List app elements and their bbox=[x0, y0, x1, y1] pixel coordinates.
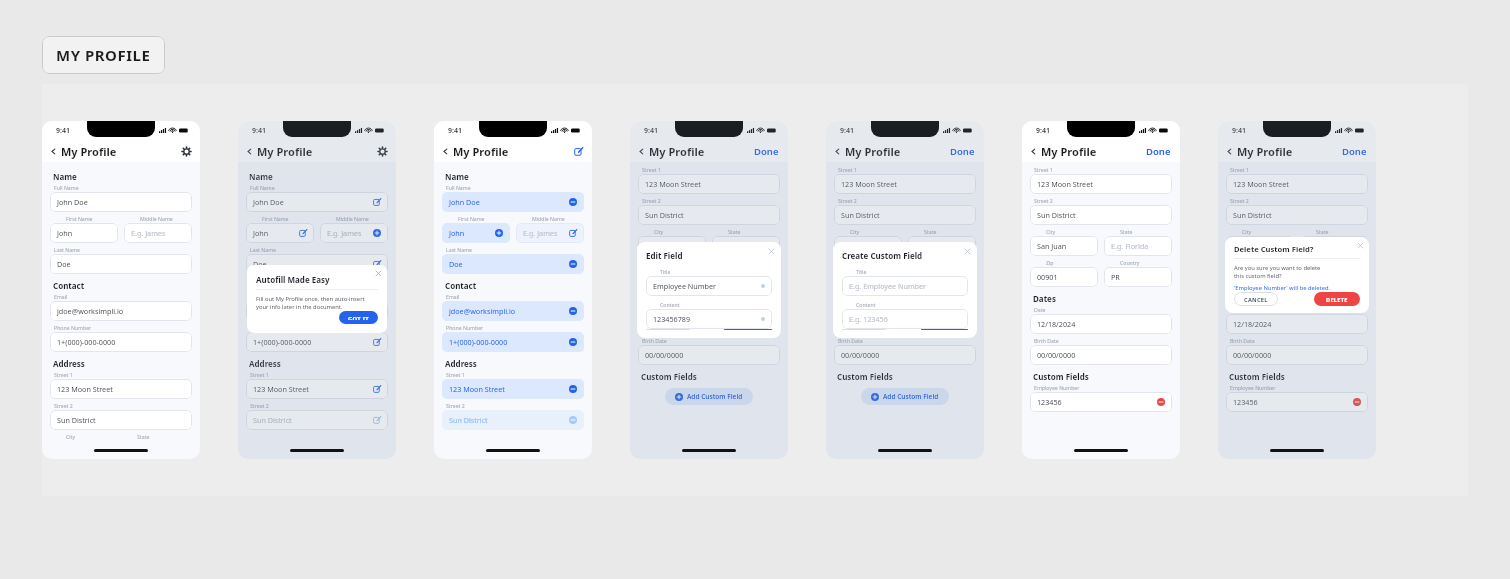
button[interactable]: Settings bbox=[378, 147, 387, 156]
button[interactable]: Settings bbox=[182, 147, 191, 156]
button[interactable]: John bbox=[50, 223, 118, 243]
button[interactable]: John Doe bbox=[442, 192, 584, 212]
button[interactable]: E.g. James bbox=[320, 223, 388, 243]
button[interactable]: Back bbox=[1226, 144, 1293, 159]
button[interactable]: jdoe@worksimpli.io bbox=[50, 301, 192, 321]
button[interactable]: Done bbox=[754, 145, 779, 158]
button[interactable]: Sun District bbox=[834, 205, 976, 225]
button[interactable]: E.g. Employee Number bbox=[842, 276, 968, 296]
button[interactable]: jdoe@worksimpli.io bbox=[442, 301, 584, 321]
button[interactable]: 123 Moon Street bbox=[1030, 174, 1172, 194]
button[interactable]: PR bbox=[1104, 267, 1172, 287]
button[interactable]: Done bbox=[950, 145, 975, 158]
button[interactable]: John bbox=[246, 223, 314, 243]
button[interactable]: E.g. Florida bbox=[712, 236, 780, 256]
button[interactable]: Close bbox=[965, 249, 970, 254]
button[interactable]: Close bbox=[376, 271, 381, 276]
button[interactable]: San Juan bbox=[1030, 236, 1098, 256]
button[interactable]: 00901 bbox=[1030, 267, 1098, 287]
button[interactable] bbox=[712, 267, 780, 287]
button[interactable]: Sun District bbox=[442, 410, 584, 430]
button[interactable]: Back bbox=[246, 144, 313, 159]
button[interactable]: John Doe bbox=[246, 192, 388, 212]
staticText: Title bbox=[660, 268, 671, 275]
button[interactable]: jdoe@worksimpli.io bbox=[246, 301, 388, 321]
button[interactable]: Close bbox=[769, 249, 774, 254]
staticText: Street 1 bbox=[54, 371, 73, 378]
button[interactable] bbox=[638, 267, 706, 287]
button[interactable]: John bbox=[442, 223, 510, 243]
button[interactable]: 00/00/0000 bbox=[1226, 345, 1368, 365]
button[interactable]: 123456 bbox=[1226, 392, 1368, 412]
button[interactable]: CANCEL bbox=[1234, 292, 1278, 306]
staticText: E.g. Florida bbox=[915, 241, 953, 251]
button[interactable]: Doe bbox=[50, 254, 192, 274]
button[interactable]: MY PROFILE bbox=[42, 36, 165, 74]
staticText: 1+(000)-000-0000 bbox=[57, 337, 116, 347]
button[interactable] bbox=[834, 236, 902, 256]
button[interactable]: Back bbox=[834, 144, 901, 159]
button[interactable]: 1+(000)-000-0000 bbox=[246, 332, 388, 352]
button[interactable]: 123 Moon Street bbox=[834, 174, 976, 194]
button[interactable]: 123 Moon Street bbox=[442, 379, 584, 399]
button[interactable]: CREATE bbox=[921, 329, 968, 330]
button[interactable]: 12/18/2024 bbox=[1226, 314, 1368, 334]
button[interactable]: Add Custom Field bbox=[861, 388, 949, 405]
button[interactable]: 123456 bbox=[1030, 392, 1172, 412]
button[interactable]: Employee Number bbox=[646, 276, 772, 296]
button[interactable]: 00/00/0000 bbox=[638, 314, 780, 334]
button[interactable]: E.g. 123456 bbox=[842, 309, 968, 329]
button[interactable] bbox=[908, 267, 976, 287]
button[interactable]: 123 Moon Street bbox=[1226, 174, 1368, 194]
button[interactable]: 00/00/0000 bbox=[638, 345, 780, 365]
other: Back bbox=[246, 148, 253, 155]
button[interactable]: 00901 bbox=[1226, 267, 1294, 287]
button[interactable]: Sun District bbox=[1030, 205, 1172, 225]
button[interactable]: 00/00/0000 bbox=[834, 345, 976, 365]
button[interactable]: Doe bbox=[442, 254, 584, 274]
button[interactable]: Add Custom Field bbox=[665, 388, 753, 405]
button[interactable]: PR bbox=[1300, 267, 1368, 287]
button[interactable]: UPDATE bbox=[724, 329, 772, 330]
button[interactable]: E.g. Florida bbox=[908, 236, 976, 256]
button[interactable]: 123 Moon Street bbox=[246, 379, 388, 399]
button[interactable]: John Doe bbox=[50, 192, 192, 212]
button[interactable]: 00/00/0000 bbox=[1030, 345, 1172, 365]
staticText: Date bbox=[642, 306, 654, 313]
button[interactable]: 1+(000)-000-0000 bbox=[442, 332, 584, 352]
button[interactable]: Back bbox=[442, 144, 509, 159]
button[interactable]: Close bbox=[1358, 243, 1363, 248]
button[interactable]: 1+(000)-000-0000 bbox=[50, 332, 192, 352]
button[interactable]: Edit bbox=[574, 147, 583, 156]
button[interactable]: E.g. Florida bbox=[1300, 236, 1368, 256]
staticText: 00/00/0000 bbox=[841, 350, 880, 360]
button[interactable]: Back bbox=[638, 144, 705, 159]
button[interactable]: San Juan bbox=[1226, 236, 1294, 256]
button[interactable]: 123 Moon Street bbox=[50, 379, 192, 399]
button[interactable]: Sun District bbox=[50, 410, 192, 430]
button[interactable]: E.g. James bbox=[516, 223, 584, 243]
button[interactable]: Done bbox=[1146, 145, 1171, 158]
button[interactable]: Back bbox=[1030, 144, 1097, 159]
button[interactable]: Sun District bbox=[638, 205, 780, 225]
button[interactable] bbox=[638, 236, 706, 256]
button[interactable]: 123456789 bbox=[646, 309, 772, 329]
staticText: Street 1 bbox=[1230, 166, 1249, 173]
button[interactable]: Doe bbox=[246, 254, 388, 274]
button[interactable]: Sun District bbox=[246, 410, 388, 430]
button[interactable]: 12/18/2024 bbox=[1030, 314, 1172, 334]
button[interactable]: 00/00/0000 bbox=[834, 314, 976, 334]
button[interactable]: 123 Moon Street bbox=[638, 174, 780, 194]
button[interactable]: Sun District bbox=[1226, 205, 1368, 225]
button[interactable]: E.g. James bbox=[124, 223, 192, 243]
button[interactable] bbox=[834, 267, 902, 287]
button[interactable]: Back bbox=[50, 144, 117, 159]
staticText: DELETE bbox=[1326, 296, 1348, 302]
button[interactable]: Done bbox=[1342, 145, 1367, 158]
button[interactable]: DELETE bbox=[1314, 292, 1360, 306]
button[interactable]: GOT IT bbox=[339, 311, 378, 324]
button[interactable]: E.g. Florida bbox=[1104, 236, 1172, 256]
